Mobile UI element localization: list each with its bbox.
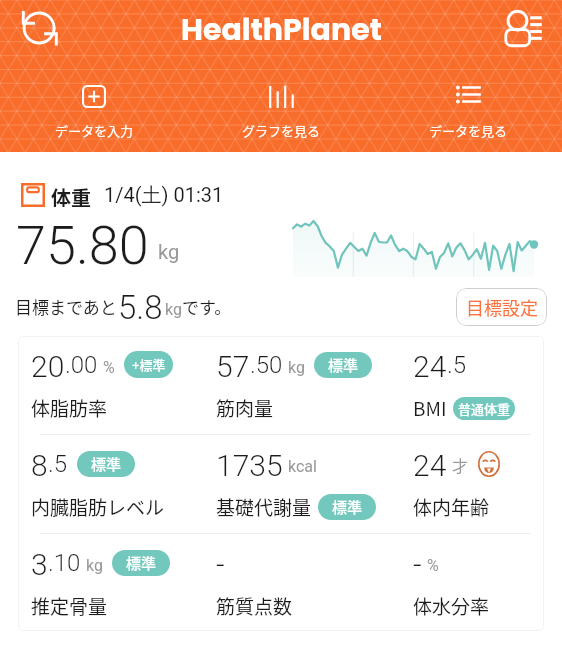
- button[interactable]: 57: [203, 336, 400, 434]
- staticText: です。: [182, 294, 232, 319]
- staticText: 目標まであと: [15, 294, 117, 319]
- staticText: 5.8: [118, 288, 163, 322]
- button[interactable]: 1735: [203, 435, 400, 533]
- staticText: .00: [65, 351, 98, 379]
- staticText: %: [427, 556, 439, 575]
- staticText: 20: [31, 349, 65, 379]
- staticText: 標準: [126, 552, 157, 574]
- staticText: kg: [158, 240, 180, 263]
- staticText: 目標設定: [466, 294, 538, 320]
- staticText: 普通体重: [458, 399, 511, 418]
- staticText: 才: [452, 453, 469, 476]
- staticText: 1/4(土) 01:31: [104, 183, 224, 207]
- staticText: データを見る: [429, 121, 508, 140]
- staticText: %: [103, 358, 115, 377]
- staticText: .5: [48, 450, 68, 478]
- staticText: 57: [216, 349, 250, 379]
- button[interactable]: データを入力: [0, 84, 188, 140]
- staticText: 24: [413, 349, 447, 379]
- staticText: 体脂肪率: [31, 394, 108, 422]
- button[interactable]: データを見る: [375, 84, 562, 140]
- button[interactable]: -: [203, 534, 400, 631]
- staticText: 基礎代謝量: [216, 493, 312, 521]
- button[interactable]: 8: [18, 435, 203, 533]
- button[interactable]: 目標設定: [456, 288, 547, 326]
- button[interactable]: -: [400, 534, 542, 631]
- staticText: kcal: [288, 457, 317, 476]
- staticText: 8: [31, 448, 48, 478]
- button[interactable]: グラフを見る: [188, 84, 375, 140]
- staticText: BMI: [413, 394, 447, 422]
- staticText: .5: [447, 351, 467, 379]
- staticText: 24: [413, 448, 447, 478]
- staticText: -: [216, 547, 225, 577]
- staticText: 標準: [332, 496, 363, 518]
- staticText: グラフを見る: [242, 121, 321, 140]
- staticText: 体水分率: [413, 592, 490, 620]
- staticText: .50: [250, 351, 283, 379]
- staticText: kg: [288, 358, 305, 377]
- staticText: +標準: [132, 355, 166, 374]
- staticText: 標準: [91, 453, 122, 475]
- button[interactable]: 3: [18, 534, 203, 631]
- staticText: .10: [48, 549, 81, 577]
- button[interactable]: Profile: [504, 9, 543, 47]
- staticText: 内臓脂肪レベル: [31, 493, 165, 521]
- staticText: データを入力: [55, 121, 134, 140]
- staticText: 1735: [216, 448, 283, 478]
- staticText: 筋質点数: [216, 592, 293, 620]
- staticText: -: [413, 547, 422, 577]
- staticText: 体内年齢: [413, 493, 490, 521]
- staticText: HealthPlanet: [181, 9, 382, 51]
- staticText: 筋肉量: [216, 394, 274, 422]
- staticText: 75.80: [16, 214, 149, 269]
- button[interactable]: Sync data: [18, 8, 62, 50]
- button[interactable]: 24: [400, 336, 542, 434]
- button[interactable]: 24: [400, 435, 542, 533]
- staticText: 3: [31, 547, 48, 577]
- staticText: 推定骨量: [31, 592, 108, 620]
- button[interactable]: 20: [18, 336, 203, 434]
- staticText: kg: [86, 556, 103, 575]
- staticText: 標準: [328, 354, 359, 376]
- staticText: kg: [165, 300, 182, 319]
- staticText: 体重: [51, 183, 91, 207]
